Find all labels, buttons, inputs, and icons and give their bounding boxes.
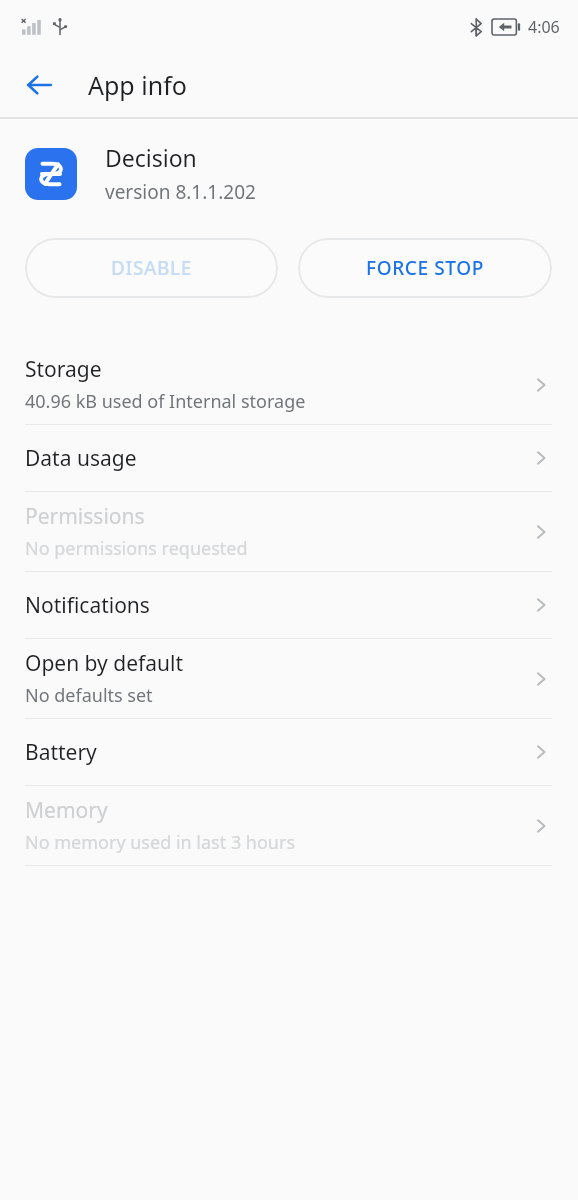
button[interactable]: Storage: [0, 345, 578, 424]
staticText: Memory: [25, 796, 108, 825]
button[interactable]: Data usage: [0, 425, 578, 491]
staticText: App info: [88, 68, 187, 102]
button[interactable]: Permissions: [0, 492, 578, 571]
staticText: DISABLE: [111, 255, 192, 281]
staticText: version 8.1.1.202: [105, 179, 256, 205]
button[interactable]: Battery: [0, 719, 578, 785]
staticText: Notifications: [25, 591, 150, 620]
staticText: Decision: [105, 142, 197, 173]
button[interactable]: DISABLE: [25, 238, 278, 298]
staticText: Battery: [25, 738, 97, 767]
staticText: No memory used in last 3 hours: [25, 830, 296, 855]
button[interactable]: Back: [12, 58, 66, 112]
staticText: Open by default: [25, 649, 184, 678]
button[interactable]: Notifications: [0, 572, 578, 638]
button[interactable]: Memory: [0, 786, 578, 865]
staticText: No permissions requested: [25, 536, 248, 561]
staticText: 4:06: [528, 16, 560, 38]
staticText: FORCE STOP: [366, 255, 484, 281]
button[interactable]: FORCE STOP: [298, 238, 552, 298]
staticText: No defaults set: [25, 683, 153, 708]
staticText: Data usage: [25, 444, 137, 473]
staticText: Permissions: [25, 502, 145, 531]
button[interactable]: Open by default: [0, 639, 578, 718]
staticText: 40.96 kB used of Internal storage: [25, 389, 306, 414]
staticText: Storage: [25, 355, 102, 384]
